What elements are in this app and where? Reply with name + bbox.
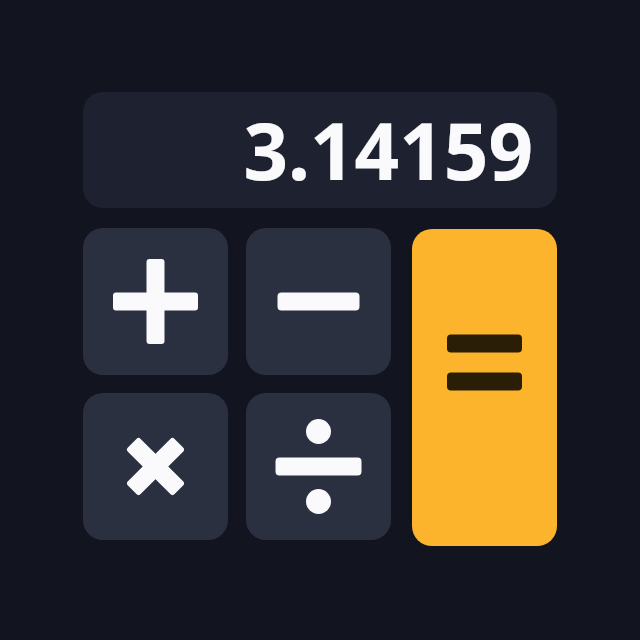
button[interactable]: Minus <box>246 228 391 375</box>
button[interactable]: Equals <box>412 229 557 546</box>
staticText: 3.14159 <box>243 97 533 203</box>
button[interactable]: Divide <box>246 393 391 540</box>
button[interactable]: 3.14159 <box>83 92 557 208</box>
button[interactable]: Multiply <box>83 393 228 540</box>
button[interactable]: Plus <box>83 228 228 375</box>
